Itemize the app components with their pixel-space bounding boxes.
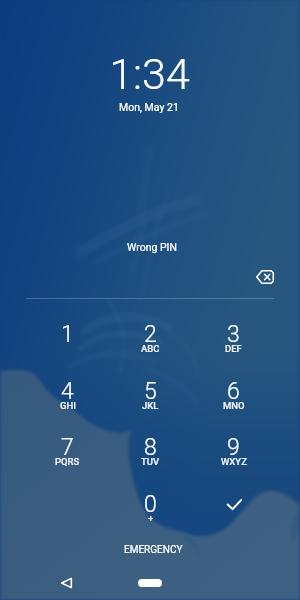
staticText: WXYZ (221, 456, 247, 467)
staticText: Wrong PIN (127, 241, 177, 253)
staticText: EMERGENCY (124, 544, 183, 556)
staticText: 0 (144, 491, 157, 518)
staticText: 7 (61, 434, 74, 461)
button[interactable]: 5 (109, 366, 192, 418)
staticText: 1:34 (109, 49, 190, 99)
button[interactable]: 7 (26, 422, 109, 474)
staticText: 3 (227, 321, 240, 348)
staticText: DEF (225, 343, 242, 354)
button[interactable]: Enter PIN (208, 482, 260, 526)
button[interactable]: 2 (109, 309, 192, 361)
button[interactable]: 8 (109, 422, 192, 474)
staticText: MNO (223, 400, 245, 411)
staticText: 9 (227, 434, 240, 461)
button[interactable]: 0 (109, 479, 192, 531)
button[interactable]: 9 (192, 422, 275, 474)
staticText: 5 (144, 378, 157, 405)
button[interactable]: 1 (26, 309, 109, 361)
staticText: 2 (144, 321, 157, 348)
button[interactable]: EMERGENCY (114, 541, 193, 559)
staticText: Mon, May 21 (119, 101, 179, 113)
button[interactable]: 4 (26, 366, 109, 418)
staticText: 1 (61, 321, 74, 348)
staticText: PQRS (55, 456, 80, 467)
staticText: 4 (61, 378, 74, 405)
staticText: TUV (141, 456, 160, 467)
button[interactable]: 6 (192, 366, 275, 418)
staticText: JKL (142, 400, 159, 411)
staticText: 6 (227, 378, 240, 405)
staticText: ABC (141, 343, 160, 354)
staticText: 8 (144, 434, 157, 461)
staticText: GHI (60, 400, 76, 411)
staticText: + (148, 513, 154, 524)
button[interactable]: Backspace (248, 260, 282, 294)
button[interactable]: Back (52, 569, 80, 597)
button[interactable]: 3 (192, 309, 275, 361)
button[interactable]: Home (138, 579, 162, 587)
